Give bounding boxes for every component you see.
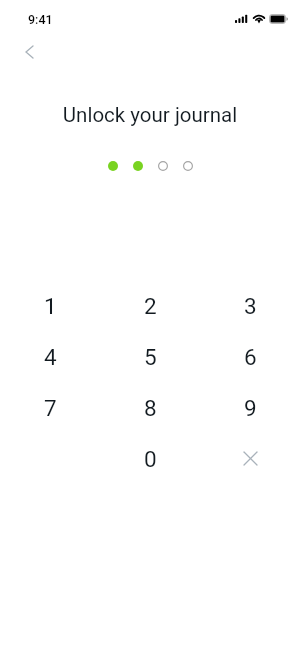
button[interactable]: 0 (100, 433, 200, 484)
button[interactable]: 2 (100, 280, 200, 331)
button[interactable]: 1 (0, 280, 100, 331)
staticText: 9:41 (28, 12, 53, 27)
button[interactable]: Delete (200, 433, 300, 484)
staticText: 9 (244, 395, 257, 421)
staticText: 7 (44, 395, 57, 421)
staticText: 5 (144, 344, 157, 370)
staticText: 3 (244, 293, 257, 319)
button[interactable]: 6 (200, 331, 300, 382)
button[interactable]: 9 (200, 382, 300, 433)
staticText: 4 (44, 344, 57, 370)
staticText: Unlock your journal (0, 103, 300, 127)
staticText: 6 (244, 344, 257, 370)
button[interactable]: 3 (200, 280, 300, 331)
button[interactable]: 7 (0, 382, 100, 433)
button[interactable]: 8 (100, 382, 200, 433)
staticText: 0 (144, 446, 157, 472)
button[interactable]: 5 (100, 331, 200, 382)
button[interactable]: 4 (0, 331, 100, 382)
button[interactable]: Back (9, 32, 49, 72)
staticText: 8 (144, 395, 157, 421)
staticText: 1 (44, 293, 57, 319)
staticText: 2 (144, 293, 157, 319)
